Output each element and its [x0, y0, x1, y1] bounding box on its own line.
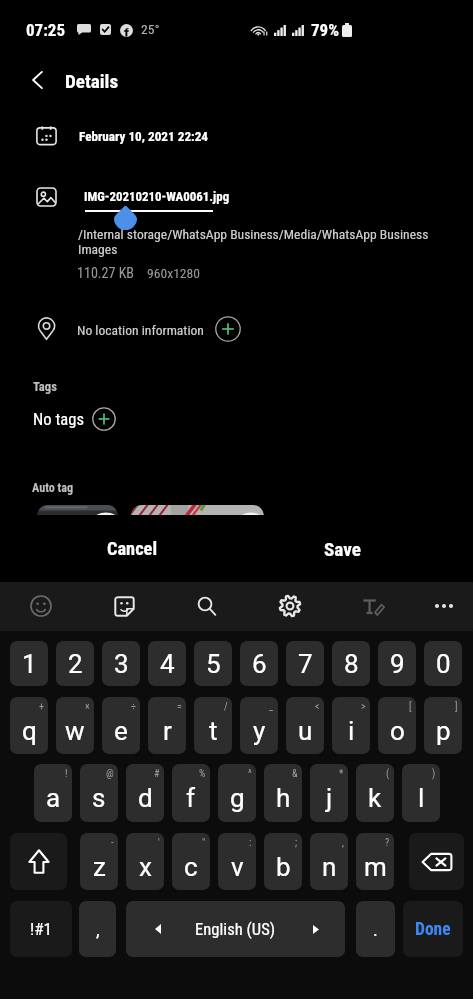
- staticText: *: [339, 768, 344, 780]
- button[interactable]: Cancel: [70, 520, 194, 578]
- staticText: r: [163, 716, 172, 746]
- button[interactable]: _: [240, 697, 278, 754]
- button[interactable]: Search: [183, 582, 231, 630]
- button[interactable]: :: [218, 833, 256, 890]
- staticText: Tags: [33, 379, 57, 394]
- button[interactable]: ÷: [102, 697, 140, 754]
- staticText: :: [249, 837, 252, 849]
- button[interactable]: ×: [56, 697, 94, 754]
- button[interactable]: 8: [332, 641, 370, 686]
- button[interactable]: ": [172, 833, 210, 890]
- button[interactable]: 0: [424, 641, 462, 686]
- staticText: o: [390, 716, 405, 746]
- staticText: No location information: [77, 322, 204, 338]
- staticText: i: [348, 716, 355, 746]
- button[interactable]: #: [126, 764, 164, 822]
- button[interactable]: 6: [240, 641, 278, 686]
- staticText: -: [111, 837, 114, 849]
- staticText: ×: [85, 701, 90, 713]
- button[interactable]: !: [34, 764, 72, 822]
- staticText: q: [22, 716, 37, 746]
- staticText: 2: [68, 649, 83, 679]
- button[interactable]: IMG-20210210-WA0061.jpg: [84, 189, 230, 204]
- button[interactable]: >: [332, 697, 370, 754]
- staticText: Cancel: [107, 538, 158, 560]
- button[interactable]: %: [172, 764, 210, 822]
- button[interactable]: 1: [10, 641, 48, 686]
- staticText: Save: [324, 538, 361, 561]
- staticText: IMG-20210210-WA0061.jpg: [84, 189, 230, 204]
- staticText: a: [46, 783, 61, 813]
- staticText: 07:25: [26, 20, 66, 40]
- button[interactable]: No tags: [33, 410, 84, 429]
- staticText: ,: [96, 919, 100, 940]
- staticText: ,: [342, 837, 344, 849]
- button[interactable]: More options: [420, 582, 468, 630]
- staticText: n: [322, 852, 337, 882]
- button[interactable]: @: [80, 764, 118, 822]
- staticText: <: [315, 701, 320, 713]
- staticText: (: [386, 768, 390, 780]
- button[interactable]: 2: [56, 641, 94, 686]
- button[interactable]: 4: [148, 641, 186, 686]
- button[interactable]: Auto tag suggestion 2: [131, 505, 264, 515]
- staticText: b: [276, 852, 291, 882]
- staticText: _: [269, 701, 274, 713]
- staticText: z: [93, 852, 106, 882]
- button[interactable]: Symbols: [10, 901, 72, 957]
- staticText: v: [231, 852, 244, 882]
- button[interactable]: Stickers: [100, 582, 148, 630]
- button[interactable]: -: [80, 833, 118, 890]
- button[interactable]: Add: [92, 407, 116, 431]
- staticText: Done: [415, 919, 451, 940]
- staticText: 1: [22, 649, 37, 679]
- staticText: x: [139, 852, 152, 882]
- button[interactable]: ^: [218, 764, 256, 822]
- button[interactable]: Details: [65, 70, 119, 92]
- button[interactable]: Save: [280, 520, 404, 578]
- staticText: =: [177, 701, 182, 713]
- button[interactable]: ?: [356, 833, 394, 890]
- button[interactable]: ;: [264, 833, 302, 890]
- button[interactable]: Settings: [266, 582, 314, 630]
- button[interactable]: =: [148, 697, 186, 754]
- button[interactable]: [: [378, 697, 416, 754]
- button[interactable]: Space: [126, 901, 345, 957]
- button[interactable]: Back: [15, 58, 59, 102]
- button[interactable]: +: [10, 697, 48, 754]
- button[interactable]: 7: [286, 641, 324, 686]
- staticText: s: [92, 783, 106, 813]
- button[interactable]: Emoji: [17, 582, 65, 630]
- button[interactable]: /: [194, 697, 232, 754]
- button[interactable]: ': [126, 833, 164, 890]
- staticText: 110.27 KB: [77, 265, 135, 282]
- staticText: Auto tag: [32, 481, 74, 495]
- button[interactable]: *: [310, 764, 348, 822]
- staticText: /: [224, 701, 228, 713]
- button[interactable]: Backspace: [409, 833, 464, 890]
- button[interactable]: Period: [356, 901, 395, 957]
- button[interactable]: ]: [424, 697, 462, 754]
- staticText: ': [158, 837, 160, 849]
- button[interactable]: Add: [215, 316, 241, 342]
- staticText: 5: [206, 649, 221, 679]
- button[interactable]: &: [264, 764, 302, 822]
- button[interactable]: ): [402, 764, 440, 822]
- button[interactable]: 5: [194, 641, 232, 686]
- staticText: c: [184, 852, 198, 882]
- button[interactable]: (: [356, 764, 394, 822]
- button[interactable]: Auto tag suggestion: [37, 505, 118, 515]
- staticText: 8: [344, 649, 359, 679]
- staticText: 6: [252, 649, 267, 679]
- button[interactable]: Comma: [79, 901, 116, 957]
- button[interactable]: ,: [310, 833, 348, 890]
- button[interactable]: 9: [378, 641, 416, 686]
- staticText: h: [276, 783, 291, 813]
- button[interactable]: Handwriting: [349, 582, 397, 630]
- button[interactable]: <: [286, 697, 324, 754]
- button[interactable]: 3: [102, 641, 140, 686]
- button[interactable]: Shift: [10, 833, 67, 890]
- button[interactable]: Done: [403, 901, 463, 957]
- staticText: >: [361, 701, 366, 713]
- staticText: ^: [248, 768, 252, 780]
